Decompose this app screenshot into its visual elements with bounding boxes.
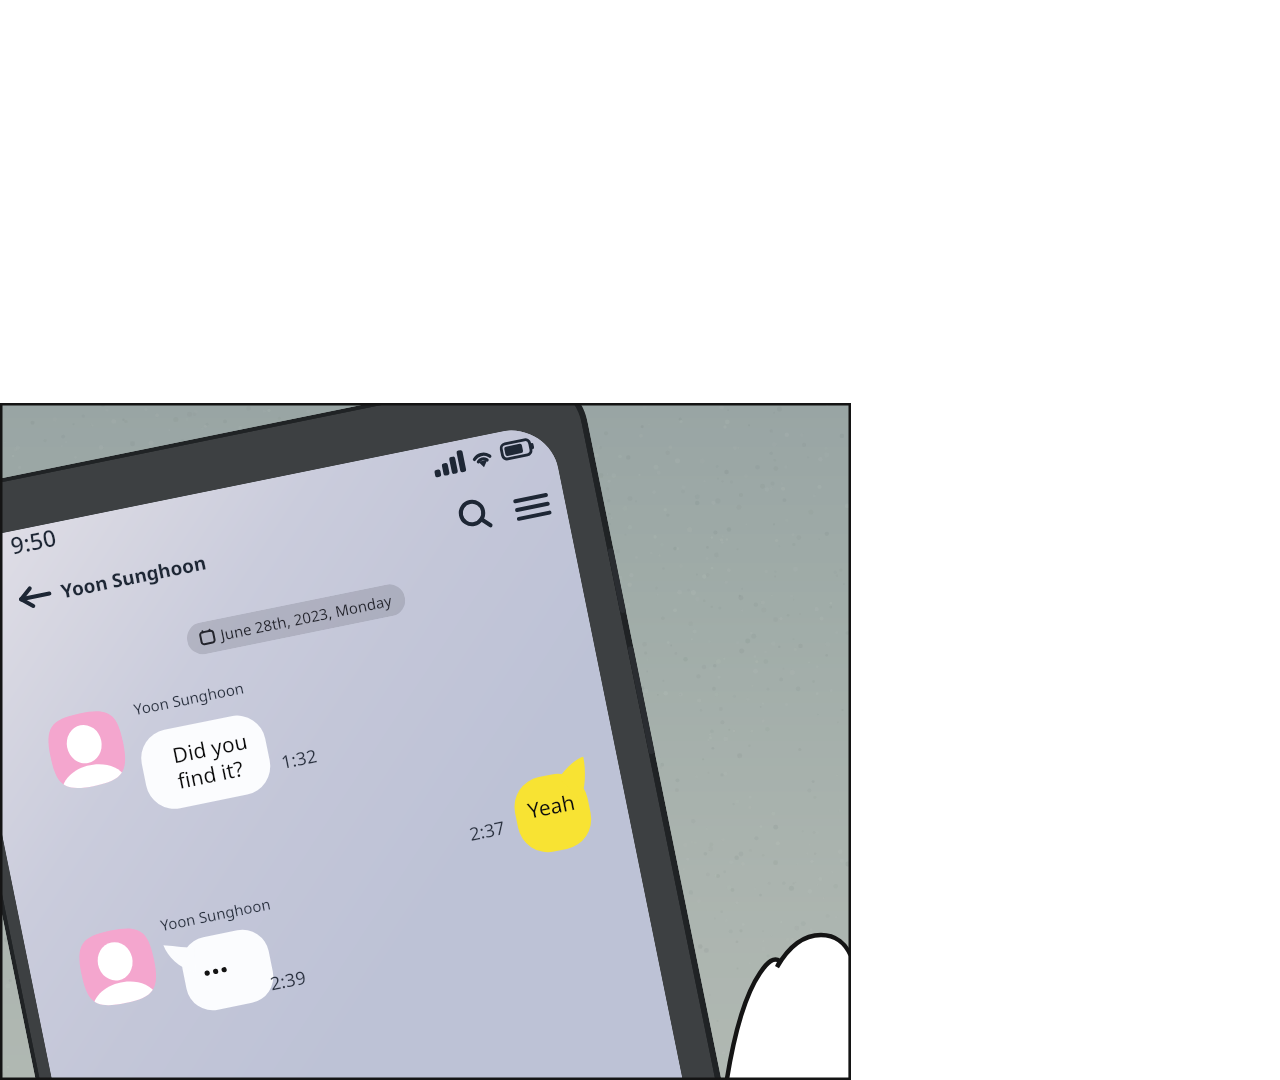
staticText: June 28th, 2023, Monday	[219, 590, 394, 644]
button[interactable]	[163, 928, 264, 1018]
button[interactable]: Profile photo	[74, 923, 161, 1010]
button[interactable]: June 28th, 2023, Monday	[184, 581, 408, 657]
button[interactable]: Menu	[513, 490, 552, 524]
button[interactable]: Did you find it?	[136, 710, 275, 814]
staticText: 2:39	[268, 965, 308, 997]
button[interactable]: Profile photo	[43, 706, 130, 793]
staticText: Yoon Sunghoon	[158, 893, 272, 935]
staticText: Did you find it?	[170, 727, 255, 796]
staticText: 1:32	[279, 743, 319, 775]
button[interactable]: Back	[17, 579, 54, 613]
staticText: Yoon Sunghoon	[132, 677, 245, 719]
staticText: 2:37	[467, 815, 507, 847]
button[interactable]: Yeah	[507, 756, 602, 847]
staticText: 9:50	[8, 523, 59, 560]
staticText: Yoon Sunghoon	[58, 549, 208, 604]
button[interactable]: Search	[456, 496, 496, 536]
staticText: Yeah	[525, 788, 578, 826]
